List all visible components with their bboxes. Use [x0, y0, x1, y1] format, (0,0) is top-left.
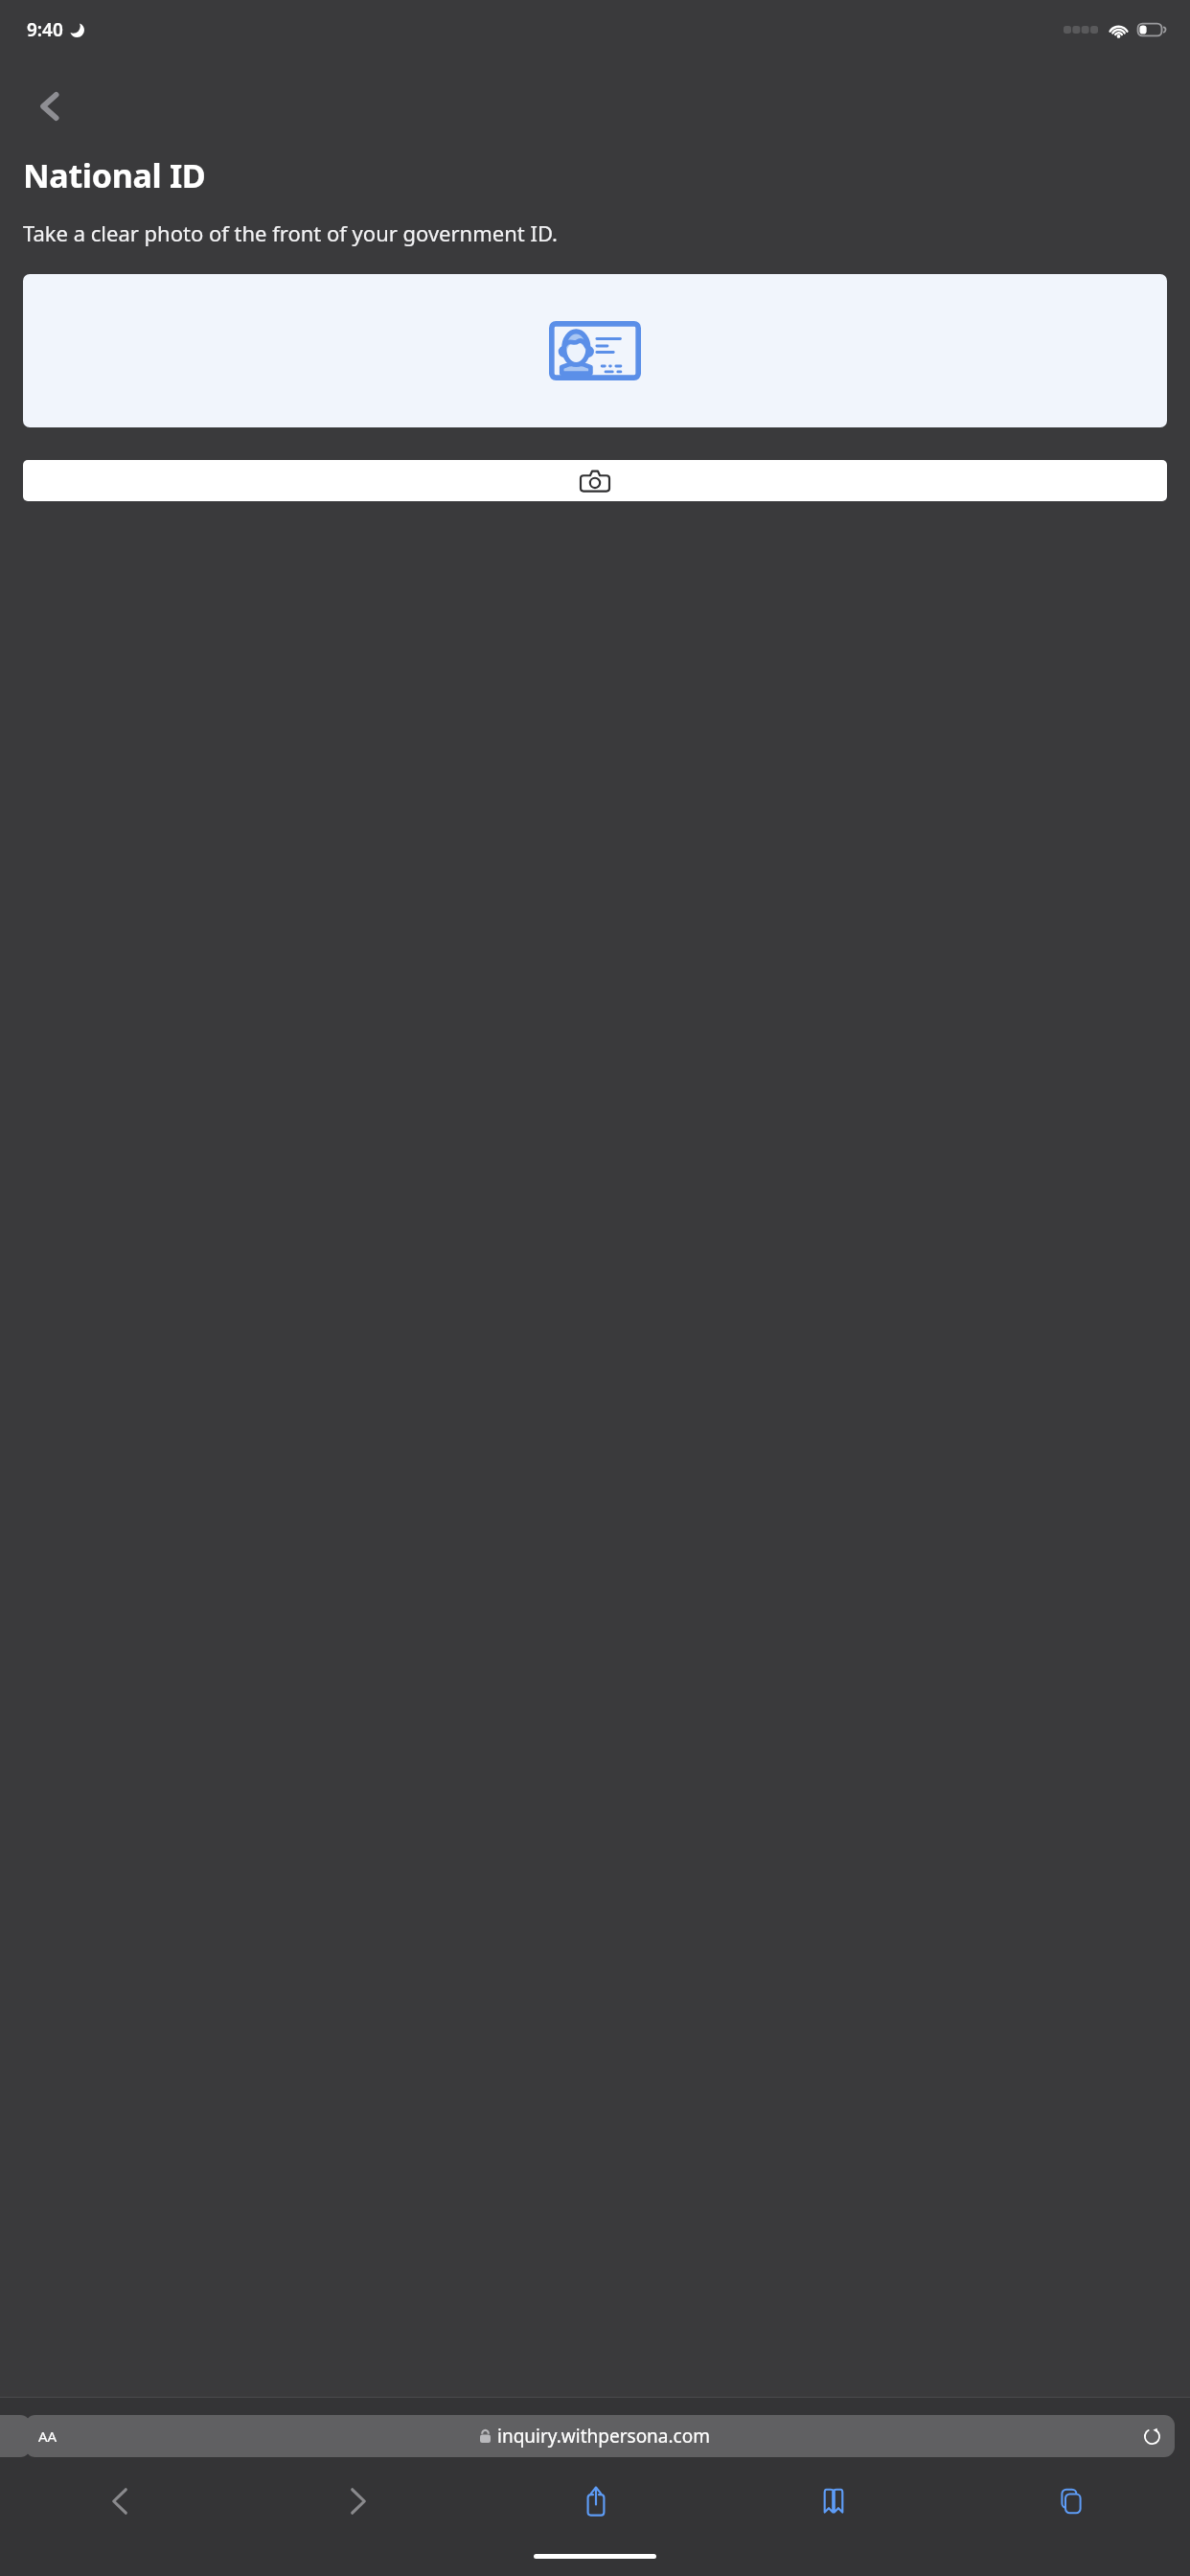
button[interactable]: Previous tab	[0, 2415, 31, 2457]
button[interactable]: Take photo	[23, 460, 1167, 501]
staticText: AA	[38, 2426, 57, 2446]
staticText: National ID	[23, 153, 206, 197]
button[interactable]: Forward	[239, 2472, 477, 2530]
button[interactable]: Reload	[1133, 2417, 1171, 2455]
staticText: inquiry.withpersona.com	[497, 2424, 710, 2449]
button[interactable]: Back	[0, 2472, 239, 2530]
staticText: Take a clear photo of the front of your …	[23, 218, 558, 247]
button[interactable]: AA	[25, 2415, 1175, 2457]
staticText: 9:40	[27, 17, 63, 42]
button[interactable]	[23, 274, 1167, 427]
button[interactable]: Bookmarks	[715, 2472, 952, 2530]
button[interactable]: Back	[23, 80, 75, 132]
button[interactable]: Share	[477, 2472, 715, 2530]
button[interactable]: Tabs	[952, 2472, 1190, 2530]
